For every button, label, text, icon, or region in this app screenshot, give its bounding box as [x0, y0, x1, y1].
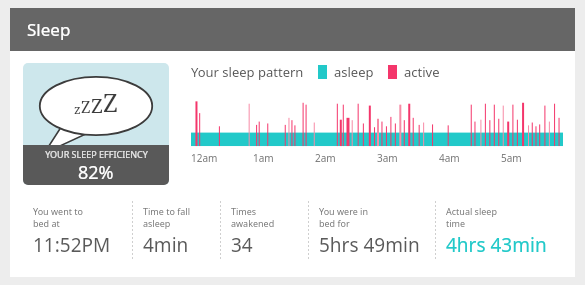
staticText: 12am	[191, 151, 218, 165]
staticText: 4min	[143, 232, 189, 258]
staticText: 1am	[253, 151, 274, 165]
other: Sleep pattern chart	[191, 99, 563, 147]
staticText: YOUR SLEEP EFFICIENCY	[45, 148, 148, 160]
staticText: 11:52PM	[33, 232, 111, 258]
staticText: z	[74, 100, 81, 118]
button[interactable]: You were in	[309, 199, 435, 261]
button[interactable]: You went to	[23, 199, 132, 261]
staticText: Z	[103, 85, 118, 119]
staticText: 34	[231, 232, 253, 258]
staticText: You were in	[319, 205, 368, 217]
staticText: 5hrs 49min	[319, 232, 420, 258]
button[interactable]: Actual sleep	[436, 199, 562, 261]
staticText: 4hrs 43min	[446, 232, 547, 258]
staticText: Z	[91, 92, 103, 119]
staticText: Times	[231, 205, 257, 217]
staticText: Actual sleep	[446, 205, 497, 217]
button[interactable]: z	[23, 63, 169, 185]
staticText: 82%	[78, 160, 114, 185]
button[interactable]: Sleep	[10, 8, 575, 51]
staticText: Z	[81, 96, 91, 118]
staticText: 5am	[501, 151, 522, 165]
staticText: 3am	[377, 151, 398, 165]
staticText: active	[404, 63, 440, 81]
staticText: Sleep	[27, 18, 71, 41]
staticText: bed at	[33, 217, 60, 229]
staticText: 4am	[439, 151, 460, 165]
staticText: Time to fall	[143, 205, 190, 217]
staticText: bed for	[319, 217, 350, 229]
staticText: awakened	[231, 217, 275, 229]
button[interactable]: Time to fall	[133, 199, 220, 261]
staticText: You went to	[33, 205, 83, 217]
button[interactable]: Times	[221, 199, 308, 261]
staticText: Your sleep pattern	[191, 63, 304, 81]
staticText: asleep	[143, 217, 171, 229]
staticText: 2am	[315, 151, 336, 165]
staticText: time	[446, 217, 466, 229]
staticText: asleep	[334, 63, 374, 81]
